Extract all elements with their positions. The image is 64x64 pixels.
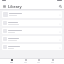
button[interactable]: More options: [58, 30, 61, 33]
button[interactable]: Saved: [36, 58, 41, 64]
button[interactable]: Menu: [2, 4, 6, 8]
button[interactable]: More options: [2, 28, 62, 34]
button[interactable]: More options: [58, 38, 61, 41]
staticText: Library: [8, 4, 22, 9]
button[interactable]: Home: [9, 58, 14, 64]
button[interactable]: More options: [58, 13, 61, 16]
button[interactable]: More options: [58, 22, 61, 25]
button[interactable]: More options: [2, 11, 62, 18]
button[interactable]: More options: [58, 46, 61, 49]
button[interactable]: Search: [58, 4, 62, 8]
button[interactable]: Profile: [50, 58, 55, 64]
button[interactable]: More options: [2, 36, 62, 42]
button[interactable]: Browse: [23, 58, 28, 64]
button[interactable]: More options: [2, 44, 62, 50]
button[interactable]: More options: [2, 20, 62, 26]
